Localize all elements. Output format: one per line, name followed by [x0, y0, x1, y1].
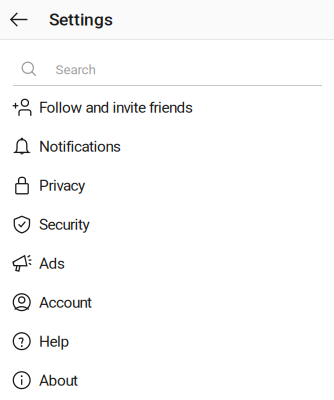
button[interactable]: Help [0, 322, 334, 361]
button[interactable]: Follow and invite friends [0, 88, 334, 127]
staticText: Account [39, 293, 92, 311]
staticText: About [39, 371, 78, 389]
staticText: Notifications [39, 137, 121, 155]
staticText: Ads [39, 254, 65, 272]
button[interactable]: Account [0, 283, 334, 322]
button[interactable]: Privacy [0, 166, 334, 205]
button[interactable]: Ads [0, 244, 334, 283]
staticText: Help [39, 332, 69, 350]
button[interactable]: Security [0, 205, 334, 244]
staticText: Security [39, 215, 89, 233]
staticText: Follow and invite friends [39, 98, 193, 116]
button[interactable]: Notifications [0, 127, 334, 166]
staticText: Settings [49, 9, 113, 30]
staticText: Privacy [39, 176, 85, 194]
button[interactable]: Search [0, 40, 334, 85]
button[interactable]: About [0, 361, 334, 400]
button[interactable]: Back [0, 0, 38, 39]
staticText: Search [55, 62, 95, 78]
